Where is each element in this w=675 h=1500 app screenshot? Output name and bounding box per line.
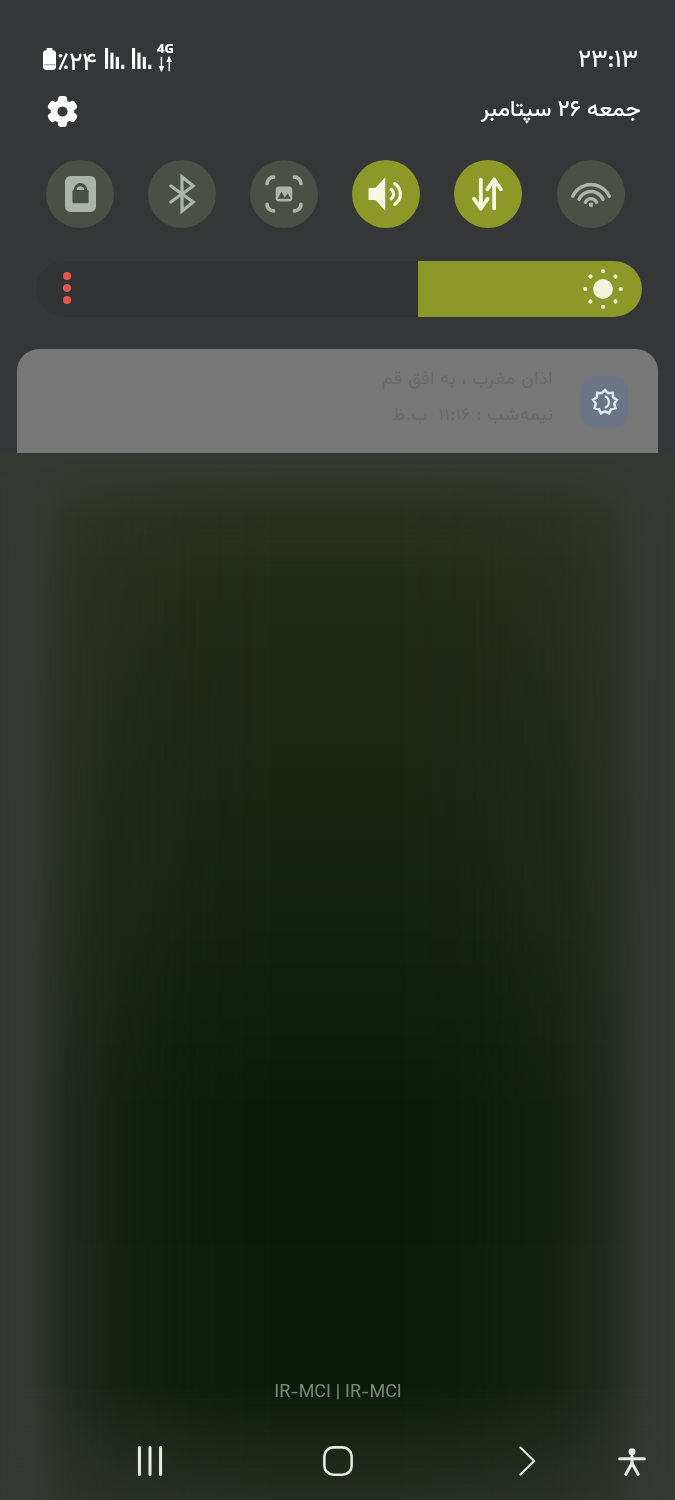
staticText: نیمه‌شب : ۱۱:۱۶ ب.ظ <box>392 402 554 430</box>
button[interactable]: Screen lock <box>46 160 114 228</box>
staticText: ٪۲۴ <box>57 44 97 83</box>
button[interactable]: Settings <box>38 87 86 135</box>
staticText: اذان مغرب ، به افق قم <box>382 366 554 394</box>
staticText: IR-MCI | IR-MCI <box>274 1379 402 1407</box>
button[interactable]: Back <box>499 1433 555 1489</box>
button[interactable]: Accessibility <box>604 1433 660 1489</box>
staticText: جمعه ۲۶ سپتامبر <box>481 92 641 128</box>
button[interactable]: Mobile data <box>454 160 522 228</box>
button[interactable]: Scan QR code <box>250 160 318 228</box>
button[interactable]: Wi-Fi <box>557 160 625 228</box>
button[interactable]: Bluetooth <box>148 160 216 228</box>
button[interactable]: Brightness <box>36 261 642 317</box>
button[interactable]: Recent apps <box>122 1433 178 1489</box>
button[interactable]: Sound <box>352 160 420 228</box>
button[interactable]: اذان مغرب ، به افق قم <box>17 349 658 453</box>
button[interactable]: Home <box>310 1433 366 1489</box>
staticText: 4G <box>157 39 174 57</box>
staticText: ۲۳:۱۳ <box>578 41 639 80</box>
